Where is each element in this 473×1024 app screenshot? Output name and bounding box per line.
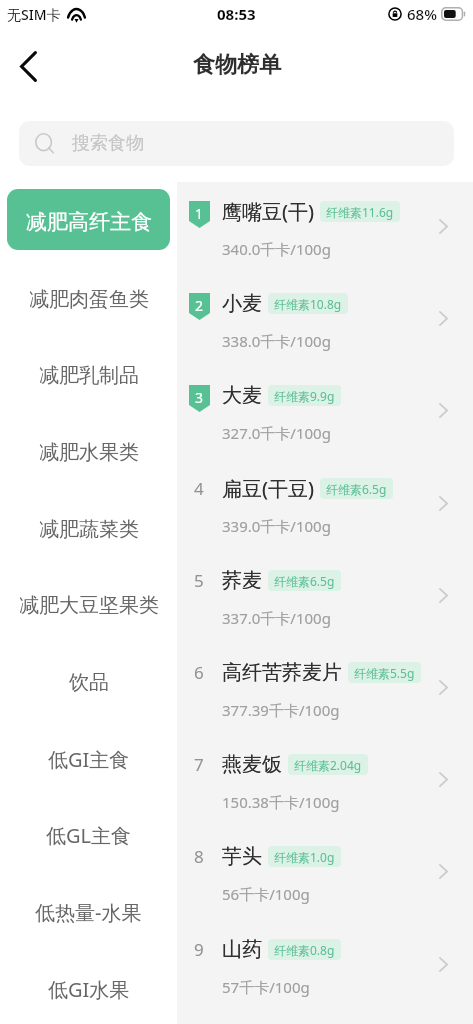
staticText: 纤维素10.8g	[274, 296, 342, 312]
staticText: 无SIM卡	[7, 5, 61, 24]
staticText: 山药	[222, 937, 262, 962]
staticText: 小麦	[222, 291, 262, 316]
button[interactable]: 减肥蔬菜类	[7, 499, 170, 559]
staticText: 7	[194, 753, 204, 776]
button[interactable]: 2	[177, 274, 473, 366]
button[interactable]: 低GL主食	[7, 805, 170, 865]
staticText: 56千卡/100g	[222, 884, 310, 904]
button[interactable]: 减肥高纤主食	[7, 192, 170, 252]
staticText: 9	[194, 938, 204, 961]
button[interactable]: 1	[177, 182, 473, 274]
staticText: 08:53	[217, 4, 256, 24]
staticText: 荞麦	[222, 568, 262, 593]
button[interactable]: 5	[177, 551, 473, 643]
staticText: 377.39千卡/100g	[222, 700, 340, 720]
staticText: 大麦	[222, 383, 262, 408]
staticText: 鹰嘴豆(干)	[222, 198, 314, 224]
staticText: 6	[194, 661, 204, 684]
staticText: 燕麦饭	[222, 752, 282, 777]
staticText: 减肥高纤主食	[26, 209, 152, 235]
staticText: 纤维素0.8g	[274, 942, 335, 958]
staticText: 低热量-水果	[35, 899, 142, 926]
staticText: 芋头	[222, 844, 262, 869]
staticText: 低GI水果	[48, 976, 130, 1003]
button[interactable]: 4	[177, 459, 473, 551]
button[interactable]: 3	[177, 366, 473, 458]
button[interactable]: 低GI水果	[7, 959, 170, 1019]
button[interactable]: 减肥水果类	[7, 422, 170, 482]
staticText: 高纤苦荞麦片	[222, 660, 342, 685]
staticText: 340.0千卡/100g	[222, 239, 331, 259]
staticText: 150.38千卡/100g	[222, 792, 340, 812]
button[interactable]: 9	[177, 920, 473, 1012]
staticText: 扁豆(干豆)	[222, 475, 314, 501]
staticText: 搜索食物	[72, 132, 144, 155]
staticText: 纤维素6.5g	[326, 481, 387, 497]
staticText: 大麦	[222, 383, 262, 408]
staticText: 减肥蔬菜类	[39, 517, 139, 542]
staticText: 扁豆(干豆)	[222, 475, 314, 501]
staticText: 57千卡/100g	[222, 977, 310, 997]
staticText: 4	[194, 477, 204, 500]
button[interactable]: 低GI主食	[7, 729, 170, 789]
button[interactable]: 减肥乳制品	[7, 345, 170, 405]
staticText: 纤维素1.0g	[274, 849, 335, 865]
button[interactable]: 饮品	[7, 652, 170, 712]
staticText: 3	[195, 388, 204, 407]
staticText: 2	[195, 296, 204, 315]
staticText: 燕麦饭	[222, 752, 282, 777]
staticText: 鹰嘴豆(干)	[222, 198, 314, 224]
button[interactable]: 低热量-水果	[7, 882, 170, 942]
staticText: 小麦	[222, 291, 262, 316]
staticText: 纤维素11.6g	[326, 204, 394, 220]
staticText: 327.0千卡/100g	[222, 423, 331, 443]
staticText: 荞麦	[222, 568, 262, 593]
button[interactable]: 减肥大豆坚果类	[7, 575, 170, 635]
staticText: 减肥大豆坚果类	[19, 593, 159, 618]
staticText: 山药	[222, 937, 262, 962]
staticText: 低GL主食	[46, 822, 132, 849]
staticText: 食物榜单	[193, 51, 281, 79]
staticText: 减肥乳制品	[39, 363, 139, 388]
staticText: 纤维素2.04g	[294, 757, 362, 773]
staticText: 低GI主食	[48, 746, 130, 773]
staticText: 68%	[407, 4, 437, 24]
staticText: 5	[194, 569, 204, 592]
button[interactable]: 8	[177, 827, 473, 919]
staticText: 减肥肉蛋鱼类	[29, 287, 149, 312]
staticText: 8	[194, 845, 204, 868]
staticText: 1	[195, 204, 204, 223]
staticText: 纤维素6.5g	[274, 573, 335, 589]
staticText: 纤维素5.5g	[354, 665, 415, 681]
button[interactable]: 7	[177, 735, 473, 827]
button[interactable]: 搜索食物	[19, 121, 454, 166]
staticText: 芋头	[222, 844, 262, 869]
staticText: 339.0千卡/100g	[222, 516, 331, 536]
staticText: 纤维素9.9g	[274, 388, 335, 404]
button[interactable]: 6	[177, 643, 473, 735]
staticText: 高纤苦荞麦片	[222, 660, 342, 685]
staticText: 减肥水果类	[39, 440, 139, 465]
button[interactable]: 减肥肉蛋鱼类	[7, 269, 170, 329]
staticText: 饮品	[69, 670, 109, 695]
staticText: 338.0千卡/100g	[222, 331, 331, 351]
staticText: 337.0千卡/100g	[222, 608, 331, 628]
button[interactable]: Back	[5, 43, 51, 89]
